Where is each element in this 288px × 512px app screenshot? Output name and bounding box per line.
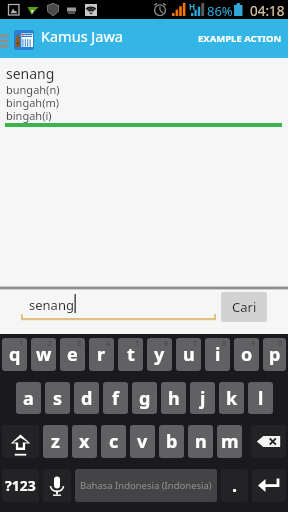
staticText: w	[36, 342, 52, 367]
button[interactable]: ?123	[2, 469, 39, 502]
staticText: 6	[164, 339, 169, 349]
staticText: k	[226, 386, 238, 411]
button[interactable]: h	[161, 382, 186, 414]
staticText: 4	[106, 339, 111, 349]
staticText: b	[166, 429, 178, 454]
staticText: d	[81, 386, 93, 411]
button[interactable]: m	[217, 425, 242, 458]
staticText: bingah(i)	[6, 108, 52, 123]
button[interactable]: Backspace	[251, 425, 286, 458]
staticText: z	[51, 429, 60, 454]
staticText: x	[79, 429, 90, 454]
staticText: 3	[77, 339, 82, 349]
staticText: f	[112, 386, 119, 411]
staticText: senang	[29, 296, 74, 314]
button[interactable]: Voice input	[43, 469, 71, 502]
staticText: s	[53, 386, 63, 411]
staticText: 0	[278, 339, 283, 349]
staticText: o	[241, 342, 253, 367]
staticText: senang	[6, 64, 55, 83]
staticText: Cari	[232, 298, 257, 316]
button[interactable]: b	[159, 425, 184, 458]
staticText: 04:18	[250, 2, 285, 20]
staticText: 7	[193, 339, 198, 349]
staticText: i	[215, 342, 221, 367]
staticText: 2	[48, 339, 53, 349]
staticText: n	[195, 429, 207, 454]
other: Enter	[252, 469, 286, 502]
button[interactable]: y	[147, 338, 172, 371]
button[interactable]: w	[31, 338, 56, 371]
button[interactable]: e	[60, 338, 85, 371]
staticText: Bahasa Indonesia (Indonesia)	[80, 479, 212, 492]
button[interactable]: u	[176, 338, 201, 371]
staticText: bingah(m)	[6, 95, 60, 110]
button[interactable]: t	[118, 338, 143, 371]
staticText: u	[183, 342, 195, 367]
button[interactable]: k	[219, 382, 244, 414]
other: Voice input	[43, 469, 71, 502]
button[interactable]: f	[103, 382, 128, 414]
staticText: H	[189, 1, 196, 12]
staticText: r	[97, 342, 106, 367]
staticText: bungah(n)	[6, 82, 60, 97]
button[interactable]: g	[132, 382, 157, 414]
button[interactable]: Enter	[252, 469, 286, 502]
button[interactable]: x	[72, 425, 97, 458]
other: Backspace	[251, 425, 286, 458]
staticText: j	[200, 386, 206, 411]
button[interactable]: s	[45, 382, 70, 414]
button[interactable]: Cari	[221, 292, 267, 322]
other: Shift	[2, 425, 39, 458]
staticText: h	[168, 386, 180, 411]
staticText: v	[137, 429, 148, 454]
staticText: 1	[19, 339, 24, 349]
staticText: ?123	[5, 476, 36, 495]
staticText: p	[269, 342, 281, 367]
staticText: g	[139, 386, 151, 411]
staticText: t	[127, 342, 135, 367]
staticText: 5	[135, 339, 140, 349]
button[interactable]: d	[74, 382, 99, 414]
staticText: EXAMPLE ACTION	[198, 32, 282, 45]
button[interactable]: senang	[21, 291, 216, 321]
button[interactable]: Shift	[2, 425, 39, 458]
button[interactable]: i	[205, 338, 230, 371]
button[interactable]: n	[188, 425, 213, 458]
staticText: .	[232, 473, 238, 498]
button[interactable]: Bahasa Indonesia (Indonesia)	[75, 469, 217, 502]
staticText: 8	[222, 339, 227, 349]
staticText: q	[9, 342, 21, 367]
staticText: y	[154, 342, 165, 367]
button[interactable]: q	[2, 338, 27, 371]
staticText: Kamus Jawa	[41, 26, 123, 46]
button[interactable]: r	[89, 338, 114, 371]
staticText: 86%	[207, 2, 233, 20]
button[interactable]: Navigation menu	[0, 27, 12, 51]
button[interactable]: .	[221, 469, 248, 502]
button[interactable]: l	[248, 382, 273, 414]
button[interactable]: j	[190, 382, 215, 414]
button[interactable]: o	[234, 338, 259, 371]
button[interactable]: a	[16, 382, 41, 414]
button[interactable]: c	[101, 425, 126, 458]
staticText: 9	[251, 339, 256, 349]
staticText: m	[221, 429, 239, 454]
staticText: c	[109, 429, 119, 454]
button[interactable]: v	[130, 425, 155, 458]
staticText: a	[23, 386, 34, 411]
staticText: l	[258, 386, 264, 411]
button[interactable]: EXAMPLE ACTION	[190, 24, 288, 53]
button[interactable]: z	[43, 425, 68, 458]
button[interactable]: p	[263, 338, 286, 371]
staticText: e	[67, 342, 78, 367]
